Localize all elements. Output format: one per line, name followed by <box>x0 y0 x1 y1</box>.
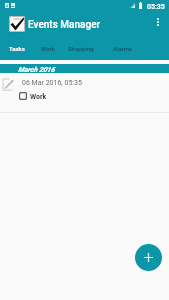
staticText: 06 Mar 2016, 05:35 <box>22 79 82 87</box>
staticText: 05:35 <box>147 3 165 11</box>
button[interactable]: More options <box>148 12 168 32</box>
staticText: Tasks <box>9 45 25 52</box>
button[interactable]: Add task <box>135 244 162 271</box>
staticText: Alarms <box>113 45 133 52</box>
staticText: March 2016 <box>18 66 55 74</box>
staticText: Work <box>30 93 47 101</box>
staticText: Events Manager <box>28 19 101 31</box>
button[interactable]: Alarms <box>105 40 141 57</box>
staticText: Shopping <box>68 45 94 52</box>
button[interactable]: Tasks <box>1 40 33 57</box>
button[interactable]: Work <box>33 40 63 57</box>
button[interactable]: Shopping <box>60 40 102 57</box>
staticText: Work <box>41 45 55 52</box>
button[interactable]: 06 Mar 2016, 05:35 <box>0 73 169 112</box>
